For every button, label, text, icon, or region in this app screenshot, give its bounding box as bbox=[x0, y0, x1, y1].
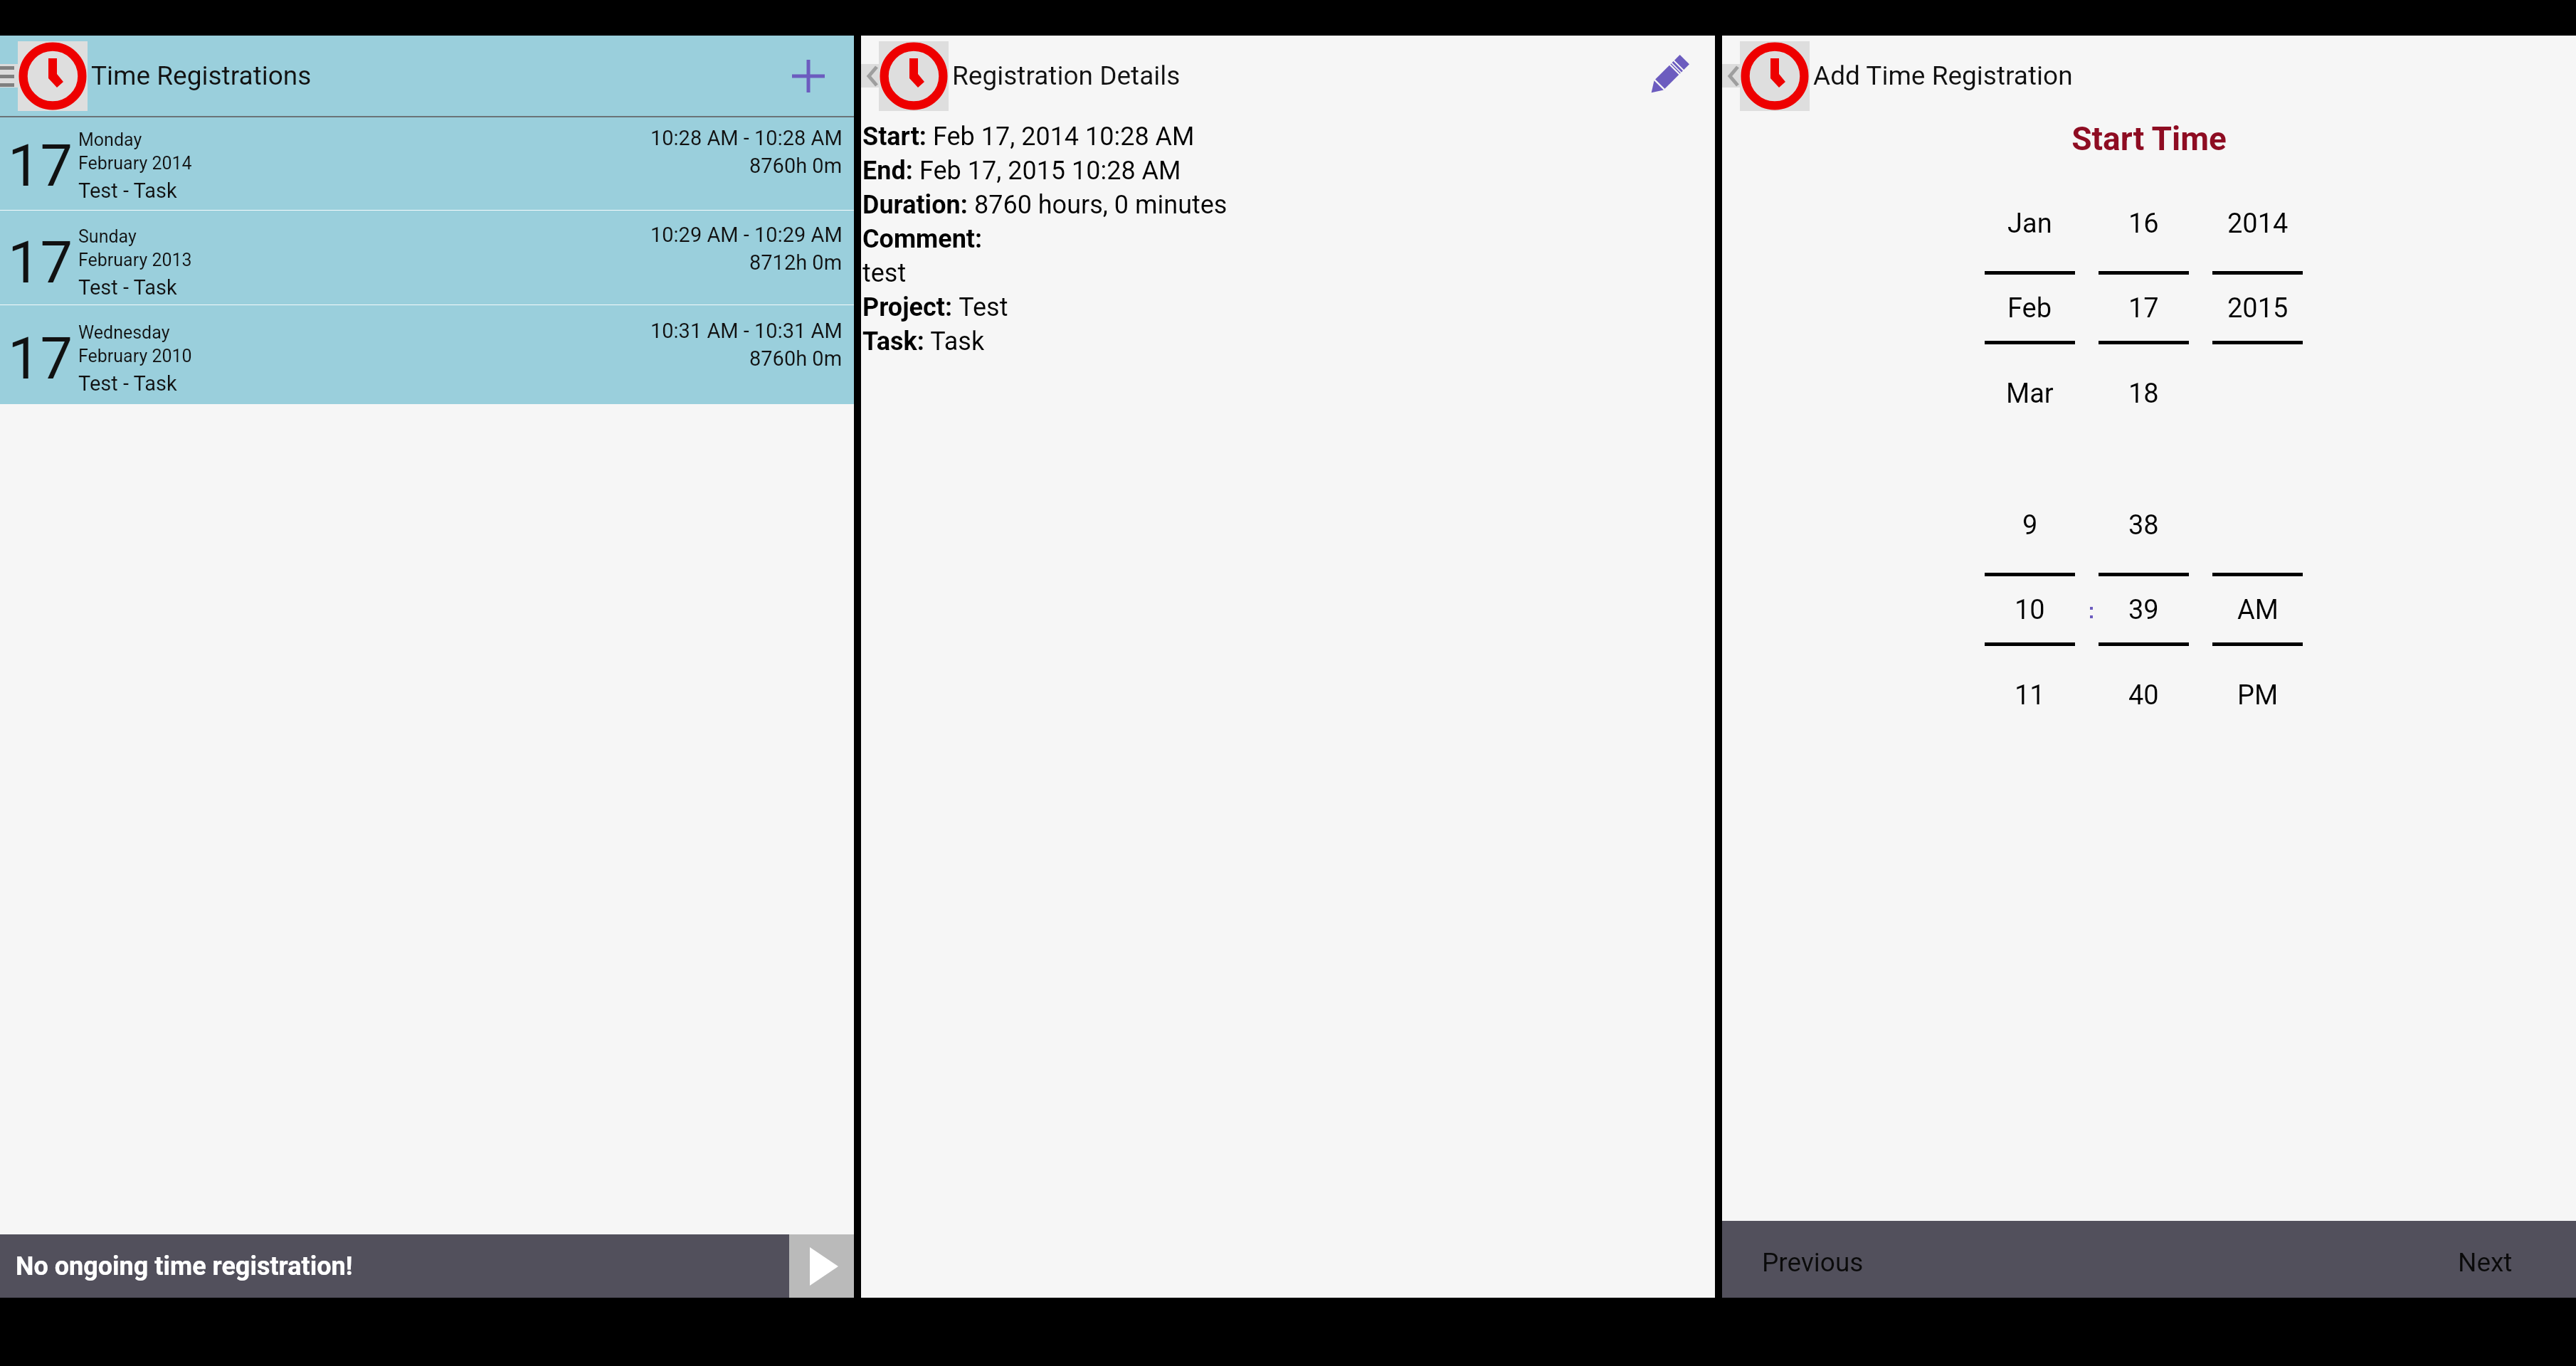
button[interactable]: Jan bbox=[1985, 200, 2075, 247]
staticText: 8760h 0m bbox=[749, 154, 843, 178]
button[interactable]: PM bbox=[2212, 672, 2303, 719]
button[interactable]: No ongoing time registration! bbox=[0, 1234, 789, 1298]
staticText: 16 bbox=[2128, 208, 2159, 240]
staticText: 18 bbox=[2128, 378, 2159, 410]
staticText: Test - Task bbox=[78, 275, 177, 300]
staticText: 10:29 AM - 10:29 AM bbox=[650, 223, 843, 247]
staticText: 17 bbox=[8, 325, 73, 393]
button[interactable]: 16 bbox=[2099, 200, 2189, 247]
staticText: 39 bbox=[2128, 594, 2159, 626]
staticText: Registration Details bbox=[952, 60, 1181, 91]
button[interactable]: Next bbox=[2149, 1221, 2576, 1298]
staticText: Time Registrations bbox=[91, 60, 312, 91]
staticText: Monday bbox=[78, 129, 142, 150]
staticText: 2015 bbox=[2227, 292, 2289, 324]
staticText: Test bbox=[953, 292, 1008, 322]
staticText: 9 bbox=[2022, 509, 2038, 541]
button[interactable]: 2015 bbox=[2212, 285, 2303, 332]
button[interactable]: 38 bbox=[2099, 502, 2189, 549]
button[interactable]: 11 bbox=[1985, 672, 2075, 719]
staticText: Comment: bbox=[862, 224, 983, 254]
button[interactable]: Add bbox=[792, 60, 825, 92]
staticText: End: bbox=[862, 156, 913, 186]
staticText: February 2013 bbox=[78, 250, 192, 270]
button[interactable]: 17 bbox=[0, 211, 854, 305]
button[interactable]: Edit bbox=[1645, 53, 1691, 100]
staticText: Add Time Registration bbox=[1813, 60, 2073, 91]
staticText: Mar bbox=[2006, 378, 2054, 410]
button[interactable]: AM bbox=[2212, 586, 2303, 633]
staticText: Feb bbox=[2007, 292, 2052, 324]
staticText: AM bbox=[2237, 594, 2279, 626]
button[interactable]: 17 bbox=[0, 305, 854, 404]
staticText: Sunday bbox=[78, 226, 137, 247]
button[interactable]: 2014 bbox=[2212, 200, 2303, 247]
button[interactable]: Previous bbox=[1722, 1221, 2149, 1298]
button[interactable]: Mar bbox=[1985, 370, 2075, 417]
button[interactable]: Back bbox=[1722, 64, 1740, 88]
button[interactable]: 9 bbox=[1985, 502, 2075, 549]
staticText: No ongoing time registration! bbox=[16, 1251, 353, 1281]
staticText: Start Time bbox=[1722, 120, 2576, 158]
button[interactable]: Feb bbox=[1985, 285, 2075, 332]
button[interactable]: 40 bbox=[2099, 672, 2189, 719]
staticText: 8712h 0m bbox=[749, 250, 843, 275]
staticText: Feb 17, 2015 10:28 AM bbox=[913, 156, 1181, 186]
staticText: Previous bbox=[1762, 1247, 1864, 1278]
button[interactable]: Back bbox=[861, 64, 879, 88]
staticText: February 2010 bbox=[78, 346, 192, 366]
button[interactable]: Menu bbox=[0, 64, 18, 88]
staticText: Start: bbox=[862, 122, 927, 152]
staticText: February 2014 bbox=[78, 153, 192, 174]
staticText: Task bbox=[924, 327, 985, 356]
staticText: 38 bbox=[2128, 509, 2159, 541]
staticText: 8760 hours, 0 minutes bbox=[968, 190, 1228, 220]
staticText: 10:31 AM - 10:31 AM bbox=[650, 319, 843, 343]
staticText: 40 bbox=[2128, 679, 2159, 711]
staticText: 17 bbox=[8, 132, 73, 200]
staticText: test bbox=[862, 258, 907, 288]
staticText: Next bbox=[2458, 1247, 2513, 1278]
staticText: Test - Task bbox=[78, 179, 177, 203]
staticText: Test - Task bbox=[78, 371, 177, 396]
button[interactable]: 17 bbox=[2099, 285, 2189, 332]
staticText: Jan bbox=[2007, 208, 2052, 240]
staticText: PM bbox=[2237, 679, 2279, 711]
button[interactable]: 39 bbox=[2099, 586, 2189, 633]
staticText: 8760h 0m bbox=[749, 346, 843, 371]
staticText: Wednesday bbox=[78, 322, 170, 343]
staticText: 10 bbox=[2015, 594, 2045, 626]
staticText: Duration: bbox=[862, 190, 968, 220]
staticText: 17 bbox=[2128, 292, 2159, 324]
button[interactable]: 18 bbox=[2099, 370, 2189, 417]
button[interactable]: Start bbox=[789, 1234, 854, 1298]
staticText: Task: bbox=[862, 327, 924, 356]
staticText: 17 bbox=[8, 229, 73, 297]
staticText: 11 bbox=[2015, 679, 2045, 711]
staticText: Project: bbox=[862, 292, 953, 322]
button[interactable]: 10 bbox=[1985, 586, 2075, 633]
button[interactable]: 17 bbox=[0, 117, 854, 210]
staticText: Feb 17, 2014 10:28 AM bbox=[927, 122, 1195, 152]
staticText: 10:28 AM - 10:28 AM bbox=[650, 126, 843, 150]
staticText: 2014 bbox=[2227, 208, 2289, 240]
